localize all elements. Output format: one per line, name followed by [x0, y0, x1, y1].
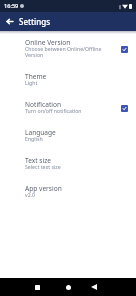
button[interactable]: Back — [4, 16, 15, 27]
button[interactable]: Recents — [28, 278, 46, 296]
button[interactable]: Notification — [0, 94, 136, 122]
staticText: Choose between Online/Offline Version — [25, 45, 103, 58]
button[interactable]: Text size — [0, 150, 136, 178]
staticText: English — [25, 135, 43, 142]
staticText: Select text size — [25, 163, 61, 170]
button[interactable]: Back — [85, 278, 103, 296]
staticText: v2.0 — [25, 191, 35, 198]
staticText: Notification — [25, 100, 62, 109]
button[interactable]: Home — [59, 278, 77, 296]
staticText: Theme — [25, 72, 47, 81]
staticText: Settings — [19, 16, 51, 27]
staticText: Text size — [25, 156, 52, 165]
button[interactable]: Toggle Notification — [121, 105, 128, 112]
staticText: Light — [25, 79, 38, 86]
staticText: Online Version — [25, 38, 71, 47]
staticText: Language — [25, 128, 56, 137]
button[interactable]: Online Version — [0, 32, 136, 66]
button[interactable]: App version — [0, 178, 136, 206]
staticText: 16:59 — [4, 2, 19, 10]
staticText: Turn on/off notification — [25, 107, 82, 114]
staticText: App version — [25, 184, 62, 193]
button[interactable]: Theme — [0, 66, 136, 94]
button[interactable]: Toggle Online Version — [121, 46, 128, 53]
button[interactable]: Language — [0, 122, 136, 150]
